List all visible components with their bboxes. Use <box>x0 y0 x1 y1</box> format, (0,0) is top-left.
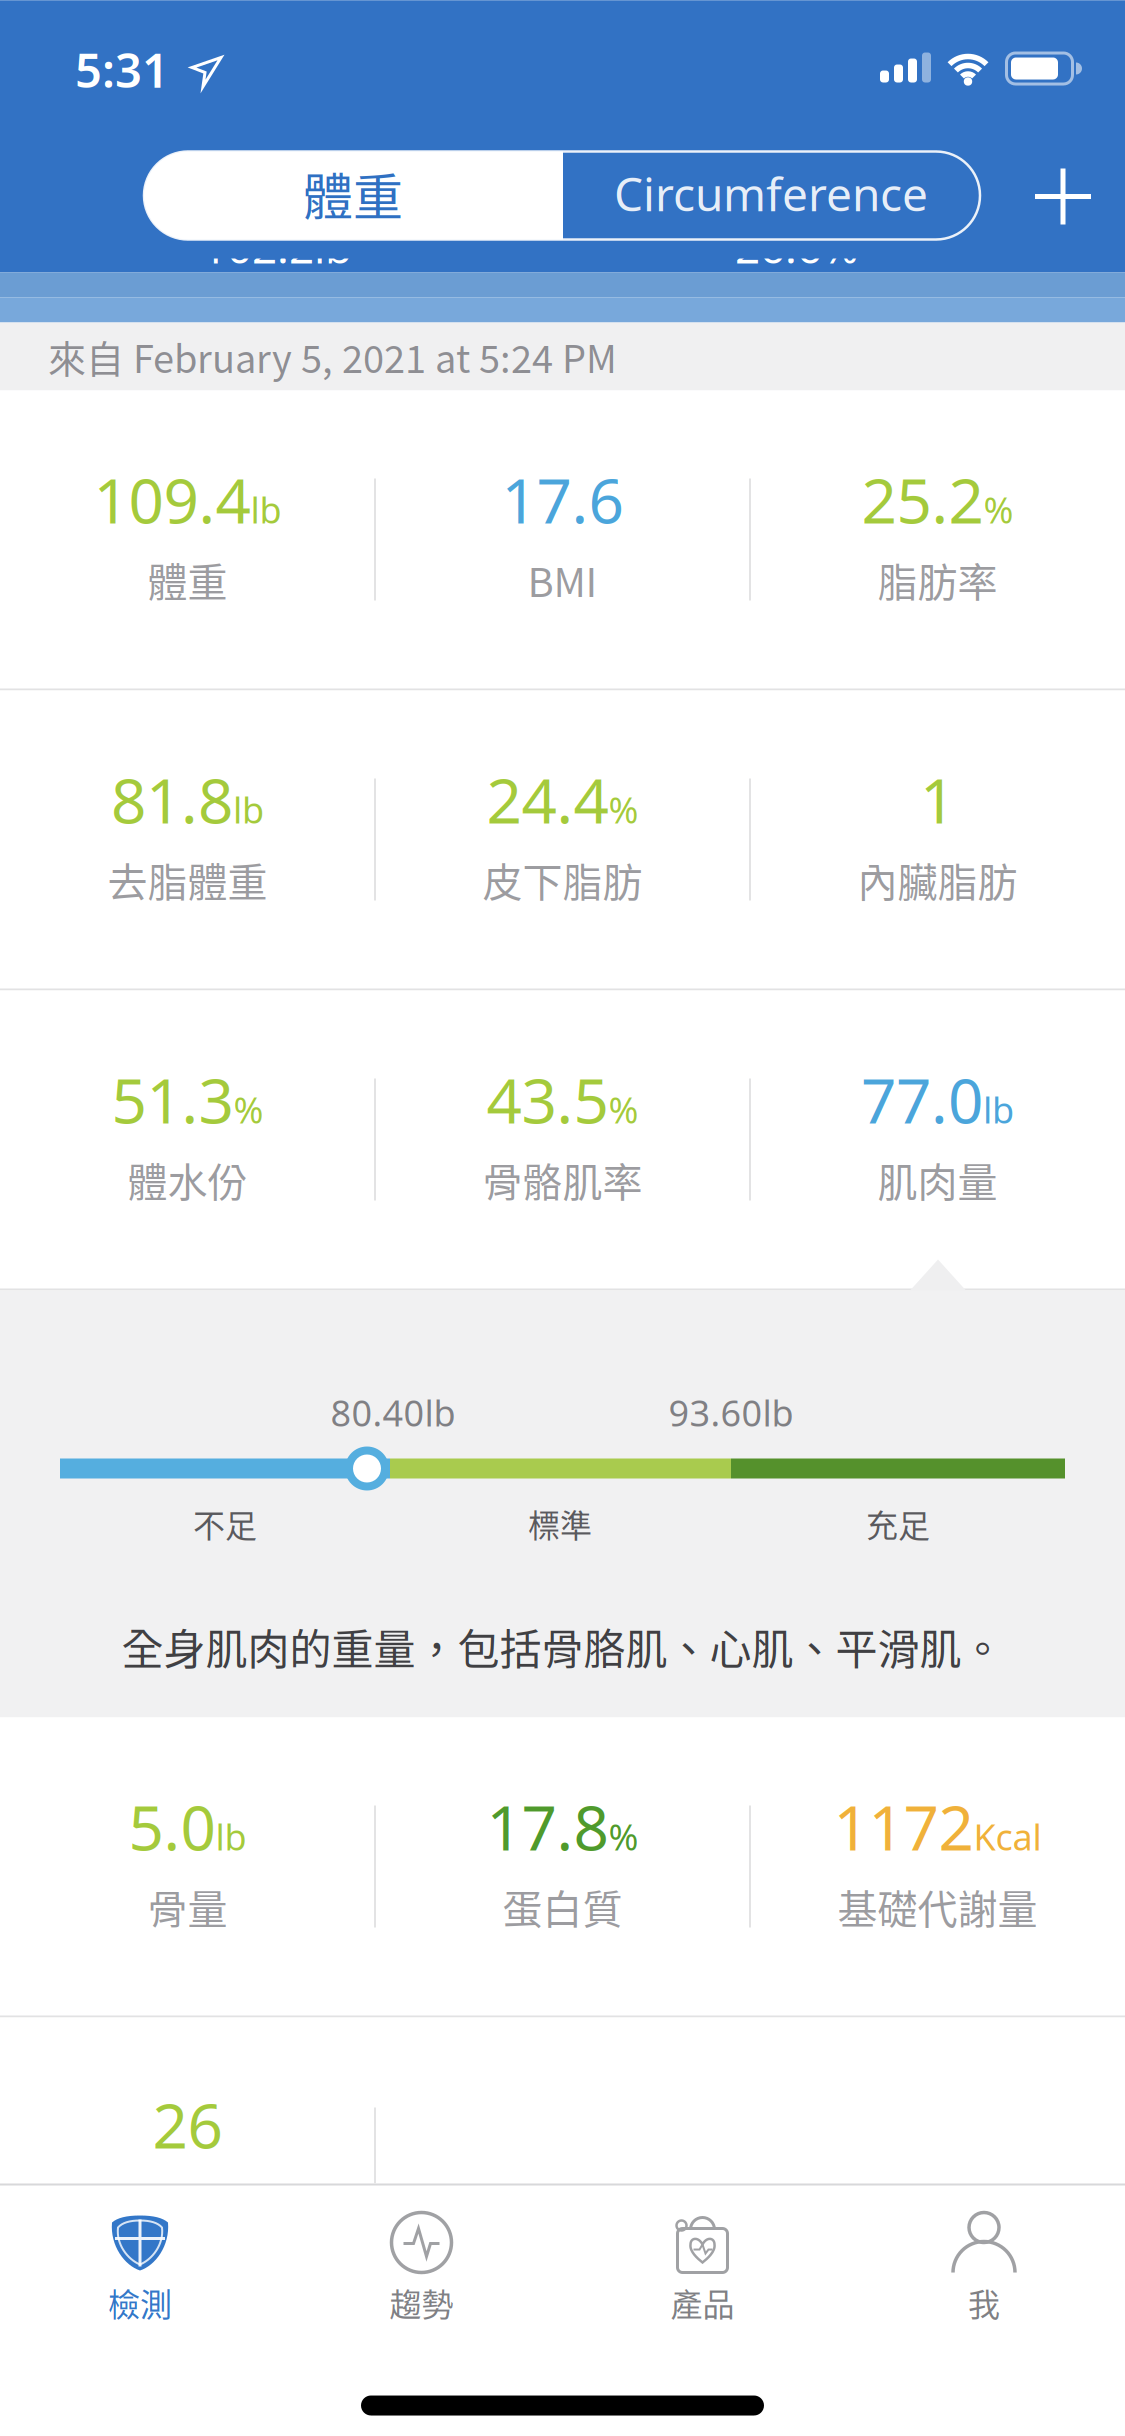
staticText: 43.5% <box>486 1058 638 1141</box>
staticText: 17.8% <box>486 1785 638 1868</box>
staticText: 24.4% <box>486 758 638 841</box>
staticText: 5:31 <box>75 37 169 101</box>
staticText: 80.40lb <box>330 1388 455 1437</box>
staticText: 皮下脂肪 <box>482 851 642 909</box>
staticText: 骨骼肌率 <box>482 1151 642 1209</box>
staticText: 26 <box>152 2082 222 2167</box>
staticText: 1172Kcal <box>833 1785 1041 1868</box>
staticText: 1 <box>920 758 955 841</box>
staticText: 25.2% <box>861 458 1013 541</box>
staticText: 體重 <box>303 157 403 230</box>
staticText: 81.8lb <box>111 758 264 841</box>
staticText: 肌肉量 <box>877 1151 997 1209</box>
staticText: 脂肪率 <box>877 551 997 609</box>
staticText: 基礎代謝量 <box>837 1878 1037 1936</box>
staticText: 趨勢 <box>389 2279 453 2326</box>
staticText: 充足 <box>866 1500 930 1547</box>
staticText: 蛋白質 <box>502 1878 622 1936</box>
staticText: 來自 February 5, 2021 at 5:24 PM <box>48 329 617 384</box>
staticText: 77.0lb <box>861 1058 1014 1141</box>
staticText: 5.0lb <box>128 1785 246 1868</box>
staticText: 不足 <box>193 1500 257 1547</box>
staticText: 體水份 <box>127 1151 247 1209</box>
staticText: 骨量 <box>147 1878 227 1936</box>
staticText: Circumference <box>614 162 928 225</box>
staticText: 檢測 <box>108 2279 172 2326</box>
staticText: 全身肌肉的重量，包括骨胳肌、心肌、平滑肌。 <box>121 1616 1003 1677</box>
staticText: 內臟脂肪 <box>857 851 1017 909</box>
staticText: 26.6% <box>735 216 859 276</box>
staticText: 標準 <box>528 1500 592 1547</box>
staticText: 102.2lb <box>202 216 352 276</box>
staticText: 我 <box>968 2279 1000 2326</box>
staticText: 109.4lb <box>93 458 281 541</box>
staticText: 產品 <box>670 2279 734 2326</box>
staticText: BMI <box>527 551 597 609</box>
staticText: 93.60lb <box>668 1388 793 1437</box>
staticText: 體重 <box>147 551 227 609</box>
staticText: 17.6 <box>501 458 623 541</box>
staticText: 51.3% <box>111 1058 263 1141</box>
staticText: 去脂體重 <box>107 851 267 909</box>
